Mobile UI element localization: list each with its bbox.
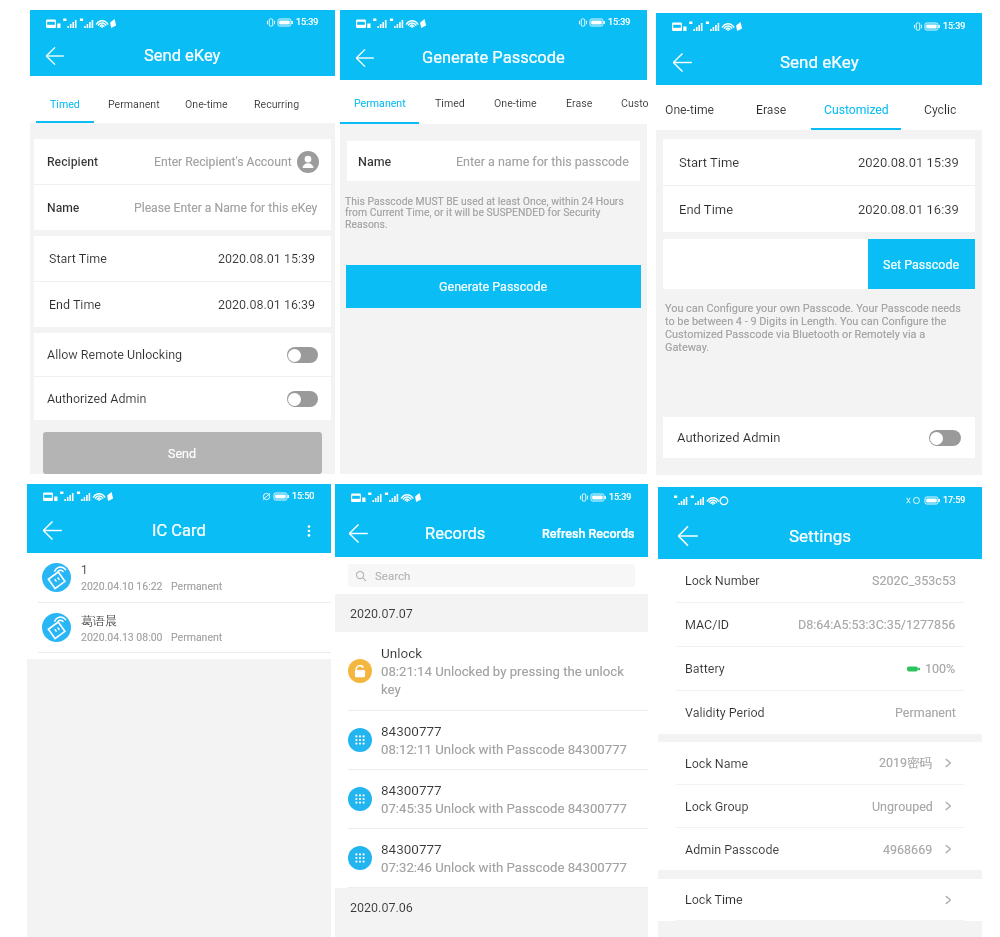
button[interactable]: Custo <box>621 81 649 125</box>
staticText: 2020.07.07 <box>350 606 413 621</box>
staticText: 84300777 <box>381 723 442 739</box>
staticText: Lock Group <box>685 799 749 814</box>
staticText: Generate Passcode <box>439 279 548 294</box>
button[interactable]: Lock Number <box>658 559 982 602</box>
button[interactable]: One-time <box>494 81 537 125</box>
staticText: 2019密码 <box>879 755 933 771</box>
staticText: Admin Passcode <box>685 842 780 857</box>
staticText: Permanent <box>108 98 160 110</box>
button[interactable]: Cyclic <box>924 87 957 132</box>
button[interactable]: End Time <box>34 282 331 327</box>
button[interactable]: Back <box>43 521 62 540</box>
staticText: Send eKey <box>144 46 221 65</box>
button[interactable]: Back <box>46 47 64 65</box>
button[interactable]: Name <box>347 141 640 181</box>
staticText: Lock Number <box>685 573 760 588</box>
staticText: Allow Remote Unlocking <box>47 347 183 362</box>
button[interactable]: MAC/ID <box>658 603 982 646</box>
button[interactable]: Permanent <box>354 81 406 125</box>
staticText: Settings <box>789 526 852 546</box>
staticText: D8:64:A5:53:3C:35/1277856 <box>798 617 956 632</box>
button[interactable]: 84300777 <box>335 711 648 769</box>
staticText: 15:39 <box>609 492 632 503</box>
button[interactable]: Back <box>349 524 368 543</box>
button[interactable]: 84300777 <box>335 829 648 887</box>
button[interactable]: Generate Passcode <box>346 265 641 308</box>
staticText: 2020.08.01 16:39 <box>858 202 959 217</box>
button[interactable]: Toggle switch <box>929 430 961 446</box>
staticText: 08:12:11 Unlock with Passcode 84300777 <box>381 742 627 757</box>
staticText: 15:39 <box>296 17 319 28</box>
staticText: 15:39 <box>608 17 631 28</box>
staticText: End Time <box>679 202 734 217</box>
button[interactable]: Send <box>43 432 322 474</box>
staticText: Lock Name <box>685 756 749 771</box>
button[interactable]: One-time <box>665 87 715 132</box>
staticText: Battery <box>685 661 725 676</box>
staticText: Authorized Admin <box>47 391 147 406</box>
button[interactable]: 84300777 <box>335 770 648 828</box>
button[interactable]: Lock Time <box>658 879 982 920</box>
button[interactable]: Start Time <box>34 236 331 281</box>
staticText: 07:45:35 Unlock with Passcode 84300777 <box>381 801 627 816</box>
button[interactable]: 1 <box>27 553 331 602</box>
staticText: Erase <box>756 103 787 117</box>
staticText: End Time <box>49 297 102 312</box>
button[interactable]: 葛语晨 <box>27 603 331 652</box>
button[interactable]: Erase <box>756 87 787 132</box>
button[interactable]: Validity Period <box>658 691 982 734</box>
staticText: Records <box>425 524 486 543</box>
button[interactable]: Timed <box>435 81 465 125</box>
button[interactable]: Name <box>34 185 331 230</box>
staticText: Please Enter a Name for this eKey <box>134 201 318 215</box>
staticText: Start Time <box>49 251 107 266</box>
button[interactable]: Lock Group <box>658 785 982 827</box>
button[interactable]: Start Time <box>663 139 975 185</box>
staticText: You can Configure your own Passcode. You… <box>665 302 970 354</box>
button[interactable]: Battery <box>658 647 982 690</box>
staticText: Cyclic <box>924 103 957 117</box>
button[interactable]: Pick contact <box>297 151 319 173</box>
button[interactable]: Toggle switch <box>287 347 318 363</box>
staticText: 84300777 <box>381 841 442 857</box>
button[interactable]: Timed <box>50 80 80 127</box>
staticText: Send eKey <box>780 52 859 72</box>
staticText: Enter a name for this passcode <box>456 154 629 169</box>
staticText: This Passcode MUST BE used at least Once… <box>345 195 642 231</box>
button[interactable]: Refresh Records <box>542 526 635 541</box>
staticText: Authorized Admin <box>677 430 781 445</box>
button[interactable]: Lock Name <box>658 742 982 784</box>
button[interactable]: Erase <box>566 81 593 125</box>
staticText: Lock Time <box>685 892 743 907</box>
staticText: Start Time <box>679 155 740 170</box>
button[interactable]: Search <box>348 564 635 587</box>
button[interactable]: Toggle switch <box>287 391 318 407</box>
button[interactable]: More options <box>301 523 317 539</box>
button[interactable]: Authorized Admin <box>34 377 331 420</box>
staticText: Permanent <box>171 580 223 592</box>
button[interactable]: Set Passcode <box>868 239 975 289</box>
button[interactable]: Permanent <box>108 80 160 127</box>
staticText: Set Passcode <box>883 257 960 272</box>
button[interactable]: End Time <box>663 186 975 232</box>
button[interactable]: Authorized Admin <box>663 417 975 458</box>
staticText: One-time <box>494 97 537 109</box>
staticText: Permanent <box>895 705 956 720</box>
staticText: 07:32:46 Unlock with Passcode 84300777 <box>381 860 627 875</box>
staticText: 2020.08.01 15:39 <box>858 155 959 170</box>
button[interactable]: Allow Remote Unlocking <box>34 333 331 376</box>
button[interactable]: Admin Passcode <box>658 828 982 870</box>
button[interactable]: Customized <box>824 87 889 132</box>
button[interactable]: Unlock <box>335 632 648 710</box>
staticText: Permanent <box>354 97 406 109</box>
button[interactable]: Back <box>678 526 698 546</box>
button[interactable]: Recipient <box>34 139 331 184</box>
button[interactable]: One-time <box>185 80 228 127</box>
button[interactable]: Back <box>673 53 692 72</box>
button[interactable]: Recurring <box>254 80 300 127</box>
button[interactable]: Back <box>356 49 374 67</box>
staticText: 1 <box>81 563 88 577</box>
staticText: Send <box>168 446 197 461</box>
staticText: Name <box>358 154 392 169</box>
staticText: Validity Period <box>685 705 765 720</box>
